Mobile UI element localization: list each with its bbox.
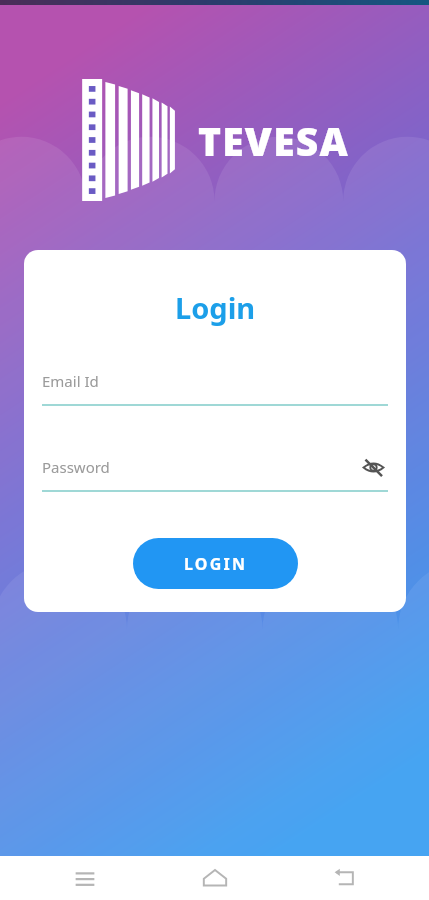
button[interactable]: Show password: [358, 453, 388, 481]
button[interactable]: Home: [170, 856, 260, 900]
button[interactable]: LOGIN: [133, 538, 298, 589]
staticText: LOGIN: [184, 553, 248, 575]
staticText: Login: [175, 288, 256, 327]
button[interactable]: Password: [42, 453, 388, 492]
staticText: Email Id: [42, 371, 99, 391]
button[interactable]: Back: [299, 856, 389, 900]
staticText: TEVESA: [198, 114, 349, 167]
staticText: Password: [42, 457, 110, 477]
button[interactable]: Recent apps: [40, 856, 130, 900]
button[interactable]: Email Id: [42, 367, 388, 406]
